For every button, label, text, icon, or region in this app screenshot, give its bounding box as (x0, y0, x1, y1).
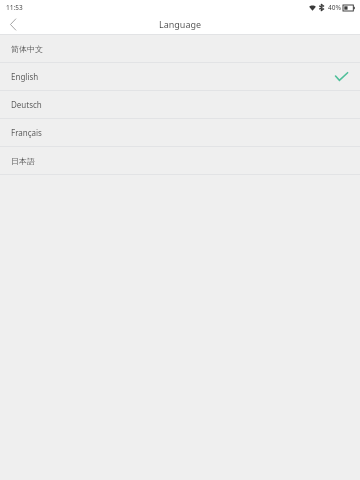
staticText: 11:53 (6, 3, 23, 12)
button[interactable]: 简体中文 (0, 35, 360, 62)
staticText: 日本語 (11, 156, 348, 166)
staticText: English (11, 71, 335, 82)
button[interactable]: Deutsch (0, 91, 360, 118)
button[interactable]: Back (0, 14, 26, 34)
staticText: Language (159, 18, 202, 30)
button[interactable]: Français (0, 119, 360, 146)
staticText: 40% (328, 3, 341, 12)
button[interactable]: English (0, 63, 360, 90)
staticText: 简体中文 (11, 44, 348, 54)
staticText: Deutsch (11, 99, 348, 110)
staticText: Français (11, 127, 348, 138)
button[interactable]: 日本語 (0, 147, 360, 174)
